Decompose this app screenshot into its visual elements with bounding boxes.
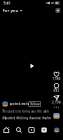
staticText: This post is to bring you the calm [2,110,48,113]
staticText: 2,104 [52,101,61,104]
button[interactable]: Follow [29,102,41,107]
button[interactable]: Reels [25,127,38,133]
staticText: #Spotted #hiking #sunrise #calm [2,116,51,120]
button[interactable]: Search [13,127,25,133]
button[interactable]: For you [3,6,23,14]
button[interactable]: Like [51,71,62,81]
staticText: 9:41 [3,0,10,6]
button[interactable]: More [51,107,62,108]
button[interactable]: Home [0,127,13,133]
staticText: For you [3,8,19,13]
button[interactable]: spotted.trails [2,101,29,107]
button[interactable]: Shop [38,127,50,133]
staticText: Follow [30,102,39,106]
staticText: 842 [53,89,59,92]
button[interactable]: Profile [50,127,63,133]
staticText: spotted.trails [10,102,29,106]
button[interactable]: Audio [54,113,59,119]
staticText: 118K [52,77,60,81]
button[interactable]: Create [55,8,60,13]
button[interactable]: Share [51,95,62,104]
button[interactable]: Comment [51,83,62,92]
